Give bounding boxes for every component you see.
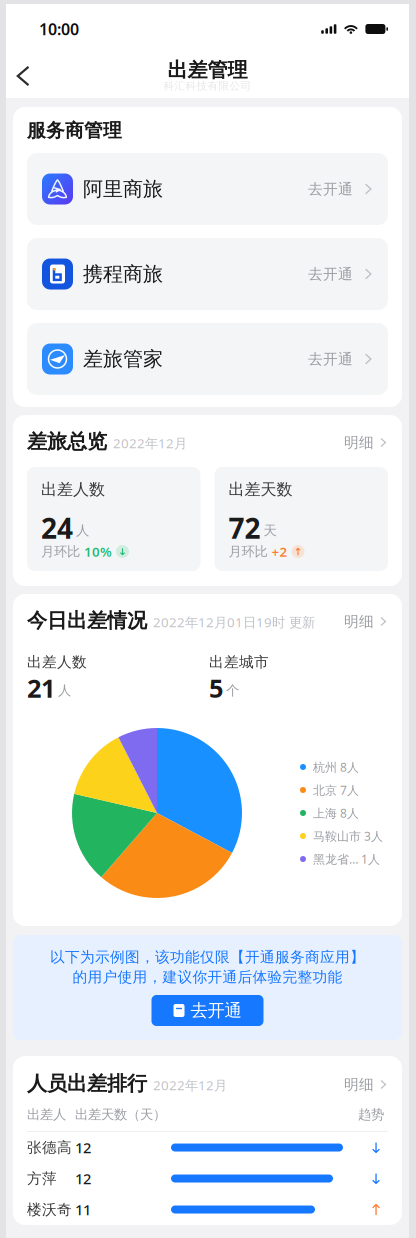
staticText: 24: [41, 509, 73, 547]
staticText: 趋势: [358, 1106, 384, 1123]
staticText: 出差人数: [27, 653, 87, 671]
staticText: 差旅总览: [27, 429, 107, 454]
staticText: 2022年12月01日19时 更新: [153, 613, 315, 631]
staticText: 出差人数: [41, 480, 105, 499]
staticText: 明细: [344, 433, 374, 451]
button[interactable]: 阿里商旅: [27, 153, 388, 225]
staticText: 服务商管理: [27, 119, 122, 142]
staticText: 10:00: [39, 18, 79, 40]
staticText: 张德高: [27, 1138, 72, 1156]
staticText: 72: [228, 509, 260, 547]
staticText: 马鞍山市 3人: [313, 828, 383, 844]
staticText: +2: [271, 543, 287, 560]
staticText: 人员出差排行: [27, 1071, 147, 1096]
staticText: 个: [226, 682, 239, 699]
staticText: 阿里商旅: [83, 177, 163, 201]
button[interactable]: 返回: [6, 54, 40, 97]
staticText: 杭州 8人: [313, 759, 359, 775]
staticText: 去开通: [308, 265, 353, 283]
staticText: 出差城市: [209, 653, 269, 671]
staticText: 21: [27, 671, 55, 705]
staticText: 方萍: [27, 1169, 57, 1187]
staticText: 出差人: [27, 1106, 66, 1123]
staticText: 去开通: [308, 180, 353, 198]
staticText: 明细: [344, 1075, 374, 1093]
staticText: 科汇科技有限公司: [163, 79, 251, 92]
staticText: 2022年12月: [113, 434, 187, 452]
staticText: 出差天数（天）: [75, 1106, 166, 1123]
staticText: 12: [75, 1138, 91, 1157]
staticText: 月环比: [228, 543, 267, 560]
staticText: 携程商旅: [83, 262, 163, 286]
button[interactable]: 明细: [344, 435, 388, 451]
staticText: 的用户使用，建议你开通后体验完整功能: [72, 968, 342, 986]
button[interactable]: 去开通: [151, 995, 263, 1026]
staticText: 人: [76, 522, 89, 539]
staticText: 黑龙省… 1人: [313, 851, 380, 867]
staticText: 上海 8人: [313, 805, 359, 821]
staticText: 差旅管家: [83, 347, 163, 371]
staticText: 10%: [84, 543, 112, 560]
staticText: 5: [209, 671, 223, 705]
button[interactable]: 明细: [344, 1077, 388, 1093]
staticText: 出差管理: [167, 58, 247, 82]
button[interactable]: 明细: [344, 614, 388, 630]
button[interactable]: 差旅管家: [27, 323, 388, 395]
staticText: 去开通: [308, 350, 353, 368]
staticText: 以下为示例图，该功能仅限【开通服务商应用】: [50, 948, 365, 966]
staticText: 天: [263, 522, 276, 539]
staticText: 2022年12月: [153, 1076, 227, 1094]
staticText: 11: [75, 1200, 91, 1219]
staticText: 去开通: [190, 1000, 241, 1021]
staticText: 今日出差情况: [27, 608, 147, 633]
button[interactable]: 携程商旅: [27, 238, 388, 310]
staticText: 12: [75, 1169, 91, 1188]
staticText: 北京 7人: [313, 782, 359, 798]
staticText: 明细: [344, 612, 374, 630]
staticText: 出差天数: [228, 480, 292, 499]
staticText: 楼沃奇: [27, 1200, 72, 1218]
staticText: 人: [58, 682, 71, 699]
staticText: 月环比: [41, 543, 80, 560]
